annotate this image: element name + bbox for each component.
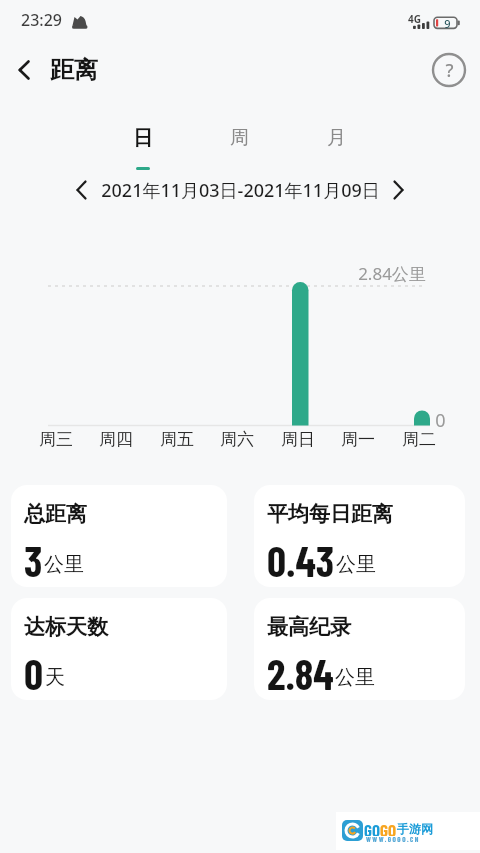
- button[interactable]: [8, 54, 42, 88]
- staticText: 月: [327, 126, 346, 150]
- staticText: GO: [380, 820, 396, 836]
- staticText: 周: [230, 126, 249, 150]
- staticText: 0.43: [267, 535, 335, 585]
- staticText: 日: [133, 126, 153, 151]
- staticText: 距离: [50, 55, 98, 85]
- staticText: 0: [435, 408, 446, 432]
- staticText: 公里: [44, 552, 84, 577]
- staticText: 3: [24, 535, 43, 585]
- staticText: WWW.GOGO.CN: [366, 835, 420, 843]
- button[interactable]: 月: [304, 121, 368, 155]
- staticText: 周二: [402, 429, 436, 450]
- button[interactable]: 平均每日距离: [254, 485, 465, 587]
- button[interactable]: 周: [207, 121, 271, 155]
- staticText: 周一: [341, 429, 375, 450]
- staticText: 2021年11月03日-2021年11月09日: [101, 178, 380, 203]
- staticText: 天: [45, 665, 65, 690]
- staticText: 公里: [336, 552, 376, 577]
- button[interactable]: 2021年11月03日-2021年11月09日: [90, 176, 390, 204]
- button[interactable]: 最高纪录: [254, 598, 465, 700]
- staticText: 2.84公里: [358, 262, 426, 285]
- staticText: 手游网: [397, 821, 433, 836]
- button[interactable]: 日: [111, 121, 175, 155]
- staticText: 周六: [220, 429, 254, 450]
- staticText: ?: [445, 58, 454, 83]
- staticText: 周三: [39, 429, 73, 450]
- staticText: 公里: [335, 665, 375, 690]
- staticText: 最高纪录: [267, 614, 351, 640]
- button[interactable]: ?: [432, 53, 466, 87]
- staticText: 总距离: [24, 501, 87, 527]
- staticText: 4G: [408, 12, 421, 26]
- staticText: 平均每日距离: [267, 501, 393, 527]
- button[interactable]: 总距离: [11, 485, 227, 587]
- staticText: 2.84: [267, 648, 334, 698]
- staticText: 0: [24, 648, 44, 698]
- staticText: 周日: [281, 429, 315, 450]
- staticText: 周五: [160, 429, 194, 450]
- button[interactable]: 达标天数: [11, 598, 227, 700]
- staticText: 23:29: [21, 9, 62, 31]
- staticText: 达标天数: [24, 614, 108, 640]
- staticText: 9: [444, 16, 451, 30]
- staticText: GO: [364, 820, 380, 836]
- staticText: 周四: [99, 429, 133, 450]
